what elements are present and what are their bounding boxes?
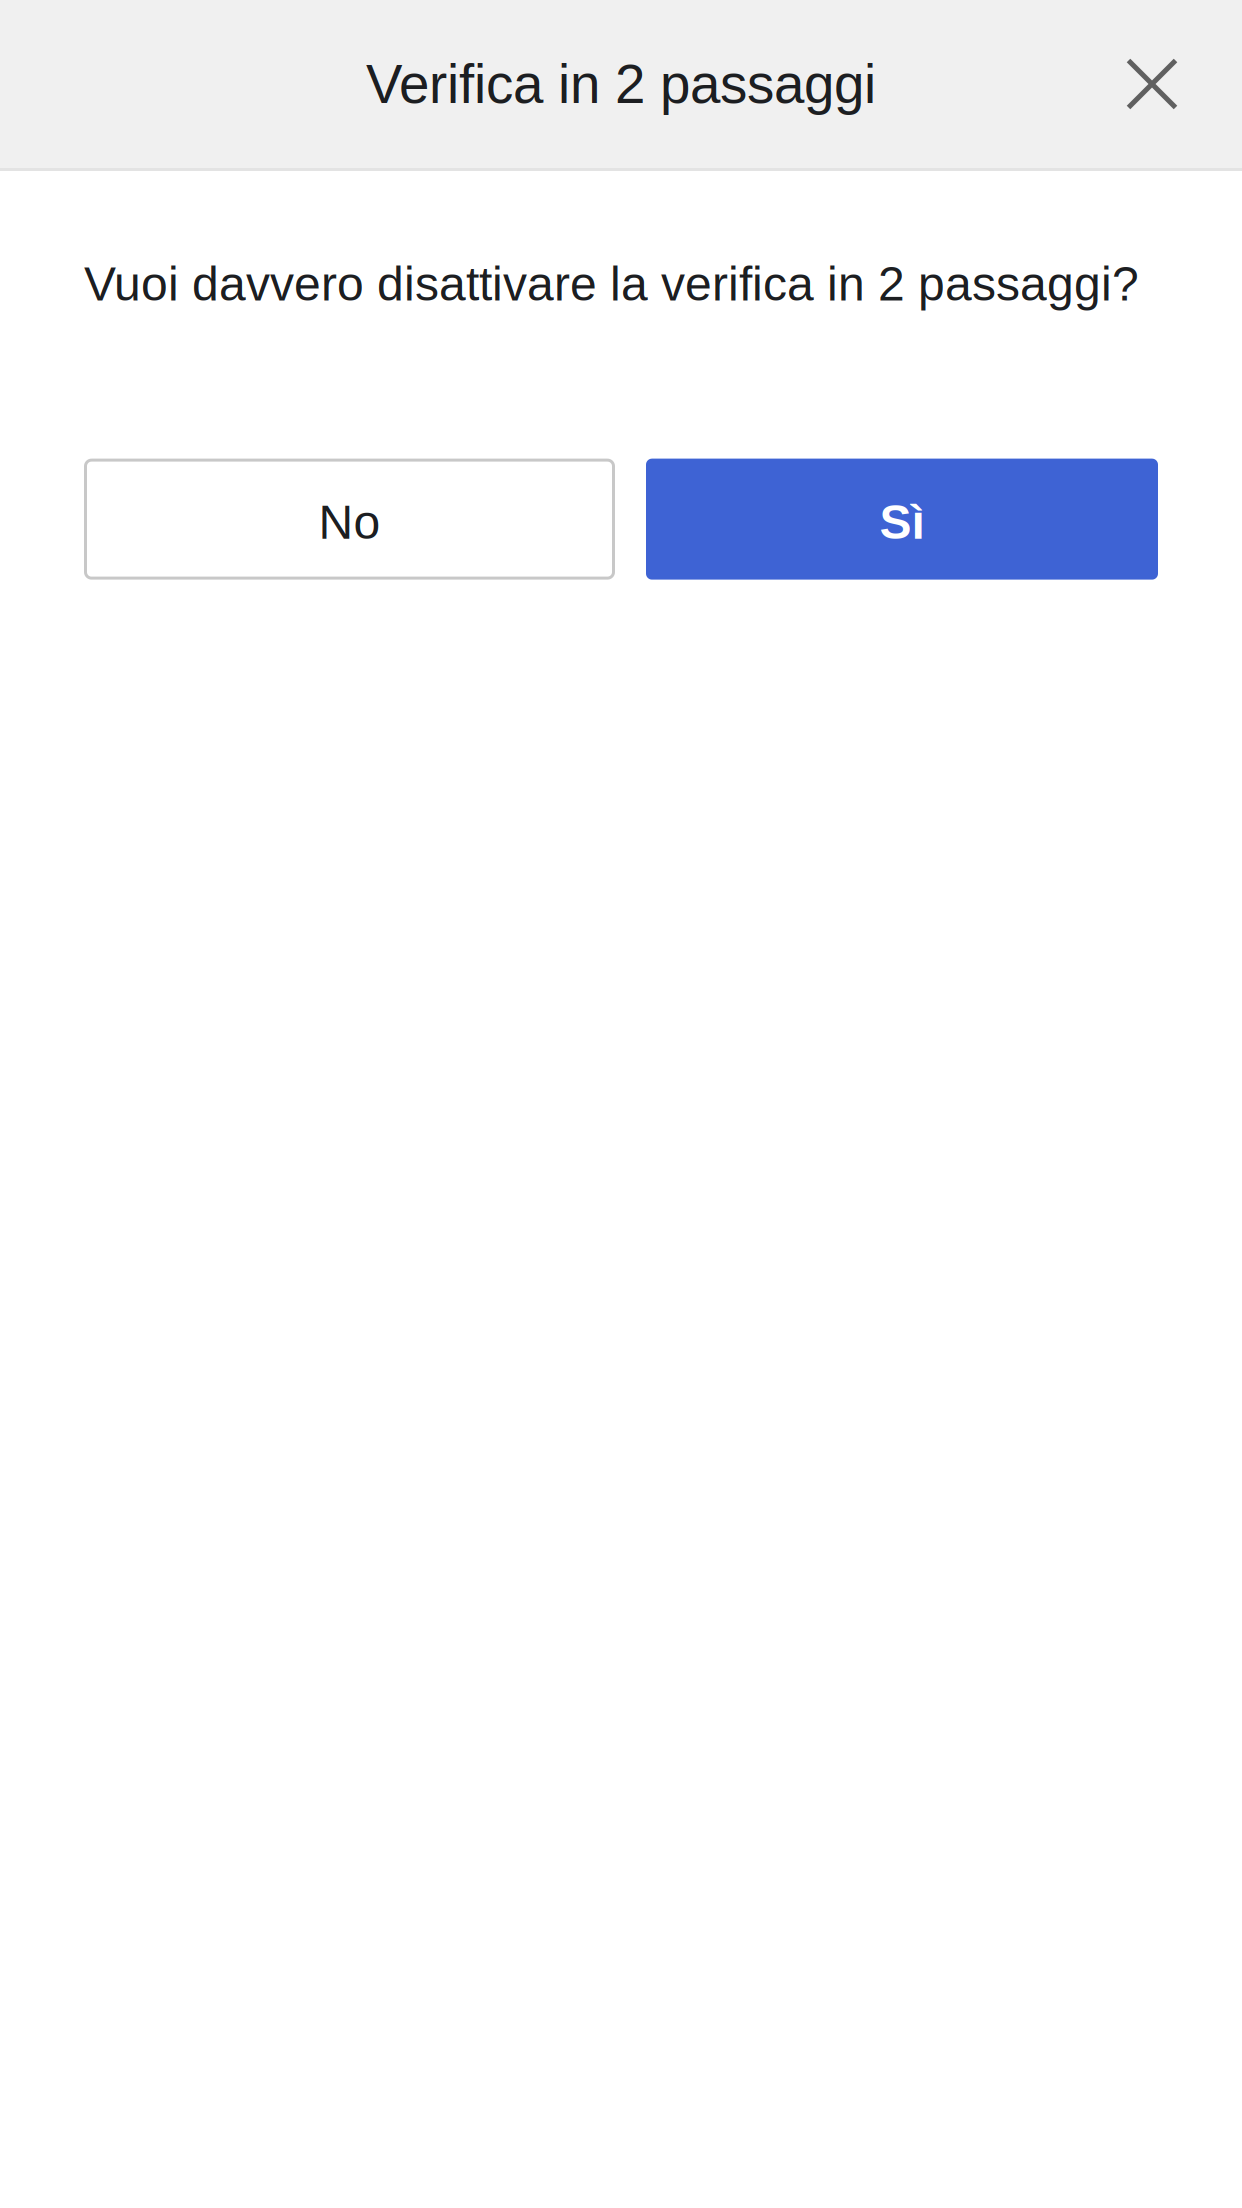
- button[interactable]: No: [84, 459, 615, 580]
- button[interactable]: Chiudi: [1096, 30, 1242, 138]
- button[interactable]: Sì: [646, 459, 1158, 580]
- staticText: No: [318, 495, 380, 549]
- staticText: Vuoi davvero disattivare la verifica in …: [84, 257, 1139, 311]
- staticText: Sì: [879, 495, 924, 549]
- staticText: Verifica in 2 passaggi: [366, 53, 876, 115]
